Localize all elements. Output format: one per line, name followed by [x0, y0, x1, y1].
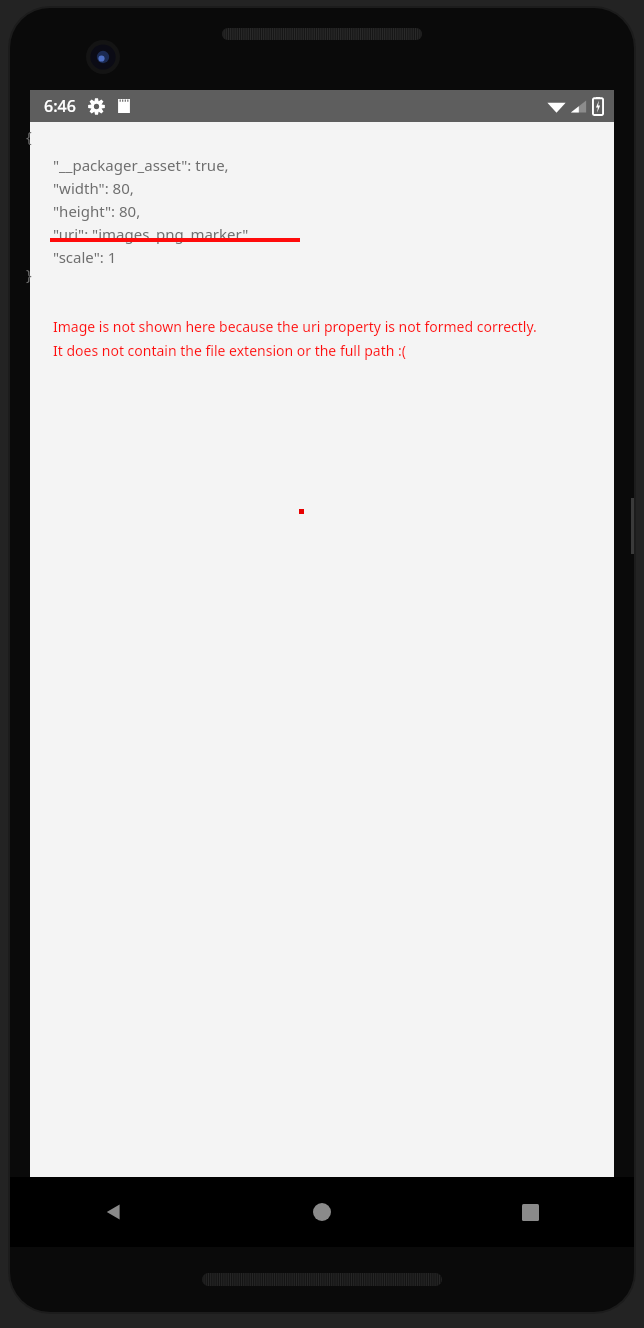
staticText: "height": 80, — [53, 201, 141, 221]
staticText: It does not contain the file extension o… — [53, 341, 406, 360]
staticText: { — [26, 126, 32, 146]
staticText: "width": 80, — [53, 178, 134, 198]
staticText: 6:46 — [44, 95, 76, 117]
staticText: "uri": "images_png_marker", — [53, 224, 253, 244]
button[interactable]: Home — [218, 1177, 426, 1247]
staticText: "__packager_asset": true, — [53, 155, 229, 175]
staticText: Image is not shown here because the uri … — [53, 317, 537, 336]
button[interactable]: Back — [10, 1177, 218, 1247]
button[interactable]: Recent apps — [426, 1177, 634, 1247]
staticText: } — [26, 264, 32, 284]
staticText: "scale": 1 — [53, 247, 117, 267]
